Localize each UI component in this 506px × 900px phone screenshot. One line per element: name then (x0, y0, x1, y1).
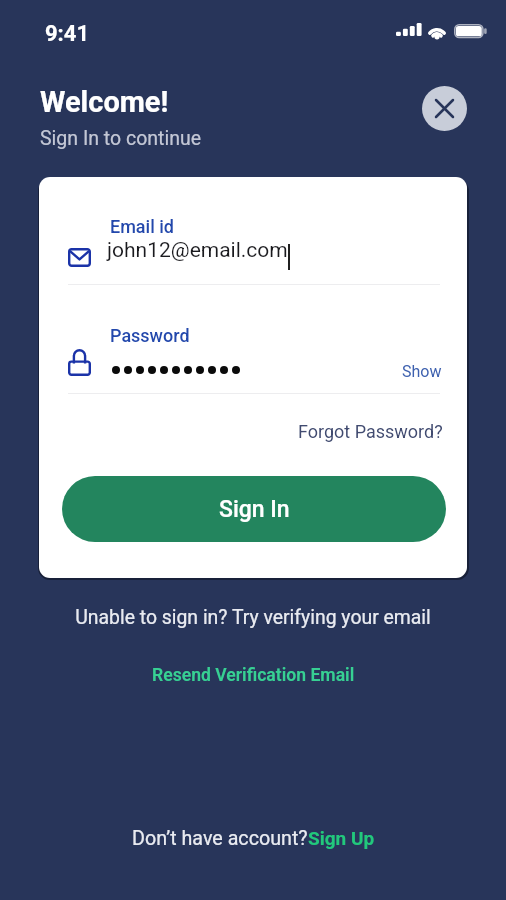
staticText: Unable to sign in? Try verifying your em… (0, 606, 506, 629)
staticText: 9:41 (45, 21, 90, 47)
staticText: Forgot Password? (298, 421, 443, 442)
button[interactable]: Email id field (68, 207, 440, 284)
button[interactable]: Forgot Password? (298, 421, 443, 442)
button[interactable]: Show (402, 362, 442, 381)
staticText: Sign In (219, 496, 290, 523)
staticText: Don’t have account? (132, 827, 308, 850)
button[interactable]: Sign In (62, 476, 446, 542)
staticText: john12@email.com (107, 238, 288, 263)
button[interactable]: Close (422, 86, 467, 131)
button[interactable]: Sign Up (308, 827, 375, 849)
staticText: Welcome! (40, 85, 169, 119)
staticText: Sign In to continue (40, 127, 202, 150)
staticText: Resend Verification Email (152, 665, 355, 686)
button[interactable]: Password field (68, 317, 398, 393)
staticText: Sign Up (308, 827, 375, 849)
button[interactable]: Resend Verification Email (152, 665, 355, 686)
staticText: Show (402, 362, 442, 381)
staticText: Password (110, 325, 190, 346)
staticText: Email id (110, 216, 174, 237)
